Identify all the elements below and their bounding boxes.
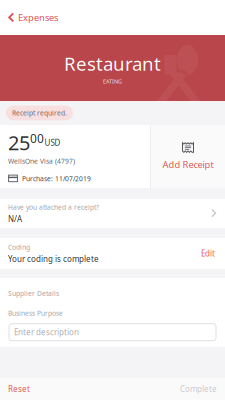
staticText: Purchase: 11/07/2019 <box>22 174 91 183</box>
button[interactable]: Edit <box>197 242 219 265</box>
staticText: Business Purpose <box>8 309 63 318</box>
staticText: Complete <box>180 384 217 394</box>
staticText: WellsOne Visa (4797) <box>8 157 75 166</box>
staticText: Supplier Details <box>8 289 59 298</box>
staticText: Receipt required. <box>12 109 67 117</box>
staticText: Add Receipt <box>162 158 213 171</box>
button[interactable]: Expenses <box>0 0 66 35</box>
staticText: Restaurant <box>64 51 161 76</box>
staticText: Coding <box>8 243 30 252</box>
staticText: 00 <box>30 130 44 146</box>
button[interactable]: Complete <box>180 377 225 400</box>
staticText: Reset <box>8 384 30 394</box>
staticText: N/A <box>8 214 22 224</box>
button[interactable]: Reset <box>0 377 30 400</box>
staticText: USD <box>44 137 60 148</box>
staticText: Have you attached a receipt? <box>8 203 99 212</box>
staticText: Your coding is complete <box>8 254 99 264</box>
staticText: Expenses <box>18 11 58 24</box>
staticText: EATING <box>103 78 122 85</box>
button[interactable]: Have you attached a receipt? <box>0 199 225 228</box>
staticText: 25 <box>8 129 30 156</box>
button[interactable]: Add Receipt <box>151 125 225 188</box>
staticText: Enter description <box>14 327 79 337</box>
staticText: Edit <box>201 248 215 259</box>
button[interactable]: Enter description <box>8 324 217 341</box>
